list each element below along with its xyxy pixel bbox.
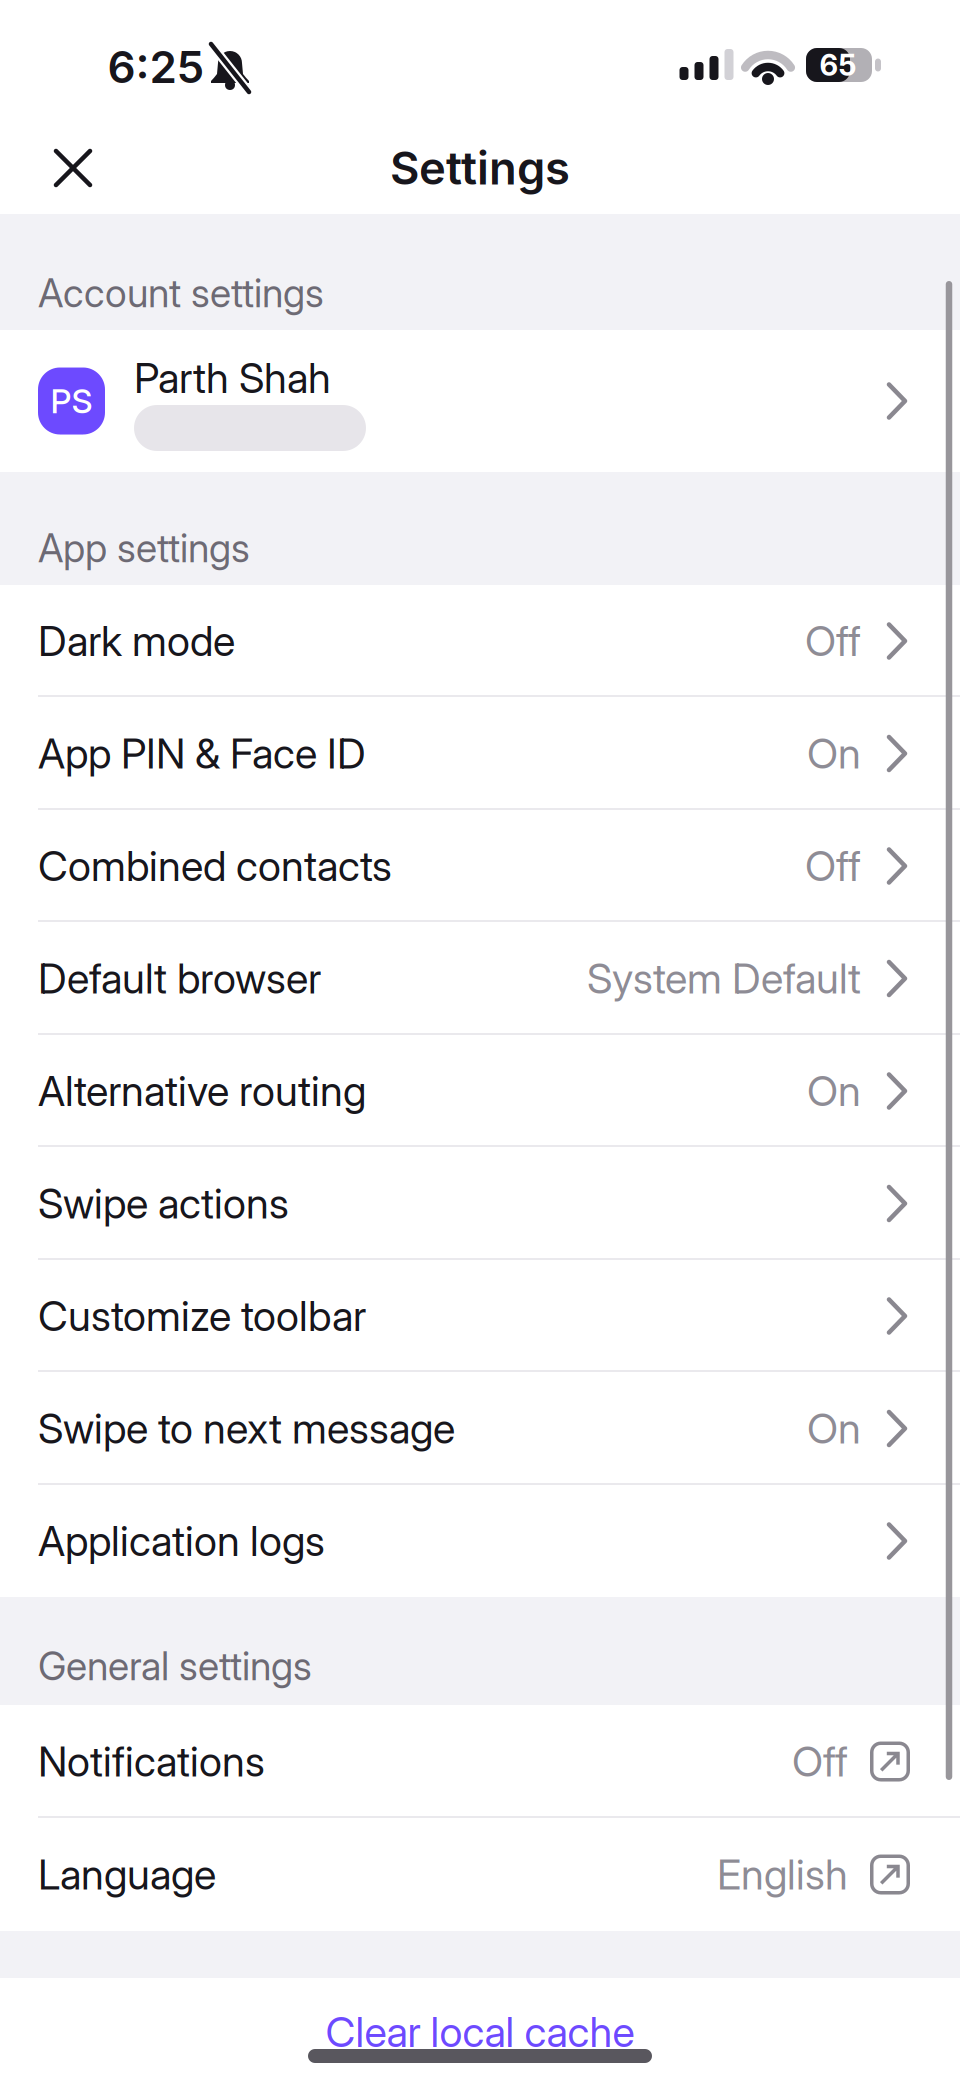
button[interactable]: Swipe to next message bbox=[0, 1372, 960, 1485]
staticText: Default browser bbox=[38, 954, 321, 1003]
staticText: Notifications bbox=[38, 1737, 265, 1786]
button[interactable]: Swipe actions bbox=[0, 1147, 960, 1260]
button[interactable]: Application logs bbox=[0, 1485, 960, 1597]
button[interactable]: Default browser bbox=[0, 922, 960, 1035]
staticText: Parth Shah bbox=[134, 354, 331, 402]
button[interactable]: Notifications bbox=[0, 1705, 960, 1818]
staticText: On bbox=[807, 1404, 861, 1453]
staticText: Off bbox=[792, 1737, 848, 1786]
staticText: Off bbox=[805, 617, 861, 665]
staticText: Combined contacts bbox=[38, 842, 392, 890]
staticText: Account settings bbox=[38, 270, 324, 316]
staticText: Application logs bbox=[38, 1517, 325, 1565]
staticText: PS bbox=[50, 381, 92, 421]
button[interactable]: Combined contacts bbox=[0, 810, 960, 922]
staticText: General settings bbox=[38, 1643, 312, 1689]
staticText: Dark mode bbox=[38, 617, 235, 665]
staticText: Swipe actions bbox=[38, 1179, 289, 1228]
staticText: On bbox=[807, 729, 861, 778]
staticText: Language bbox=[38, 1850, 216, 1899]
button[interactable]: App PIN & Face ID bbox=[0, 697, 960, 810]
staticText: 65 bbox=[819, 48, 856, 82]
button[interactable]: Alternative routing bbox=[0, 1035, 960, 1147]
staticText: System Default bbox=[587, 954, 861, 1003]
staticText: App settings bbox=[38, 525, 250, 571]
staticText: On bbox=[807, 1067, 861, 1115]
staticText: Alternative routing bbox=[38, 1067, 366, 1115]
button[interactable]: PS bbox=[0, 330, 960, 472]
button[interactable]: Close bbox=[40, 135, 106, 201]
button[interactable]: Language bbox=[0, 1818, 960, 1931]
staticText: Settings bbox=[390, 141, 570, 195]
button[interactable]: Dark mode bbox=[0, 585, 960, 697]
staticText: Off bbox=[805, 842, 861, 890]
button[interactable]: Clear local cache bbox=[305, 2008, 654, 2056]
button[interactable]: Customize toolbar bbox=[0, 1260, 960, 1372]
staticText: English bbox=[717, 1850, 848, 1899]
staticText: 6:25 bbox=[107, 41, 204, 93]
staticText: Clear local cache bbox=[325, 2008, 634, 2056]
staticText: App PIN & Face ID bbox=[38, 729, 366, 778]
staticText: Customize toolbar bbox=[38, 1292, 366, 1340]
staticText: Swipe to next message bbox=[38, 1404, 455, 1453]
